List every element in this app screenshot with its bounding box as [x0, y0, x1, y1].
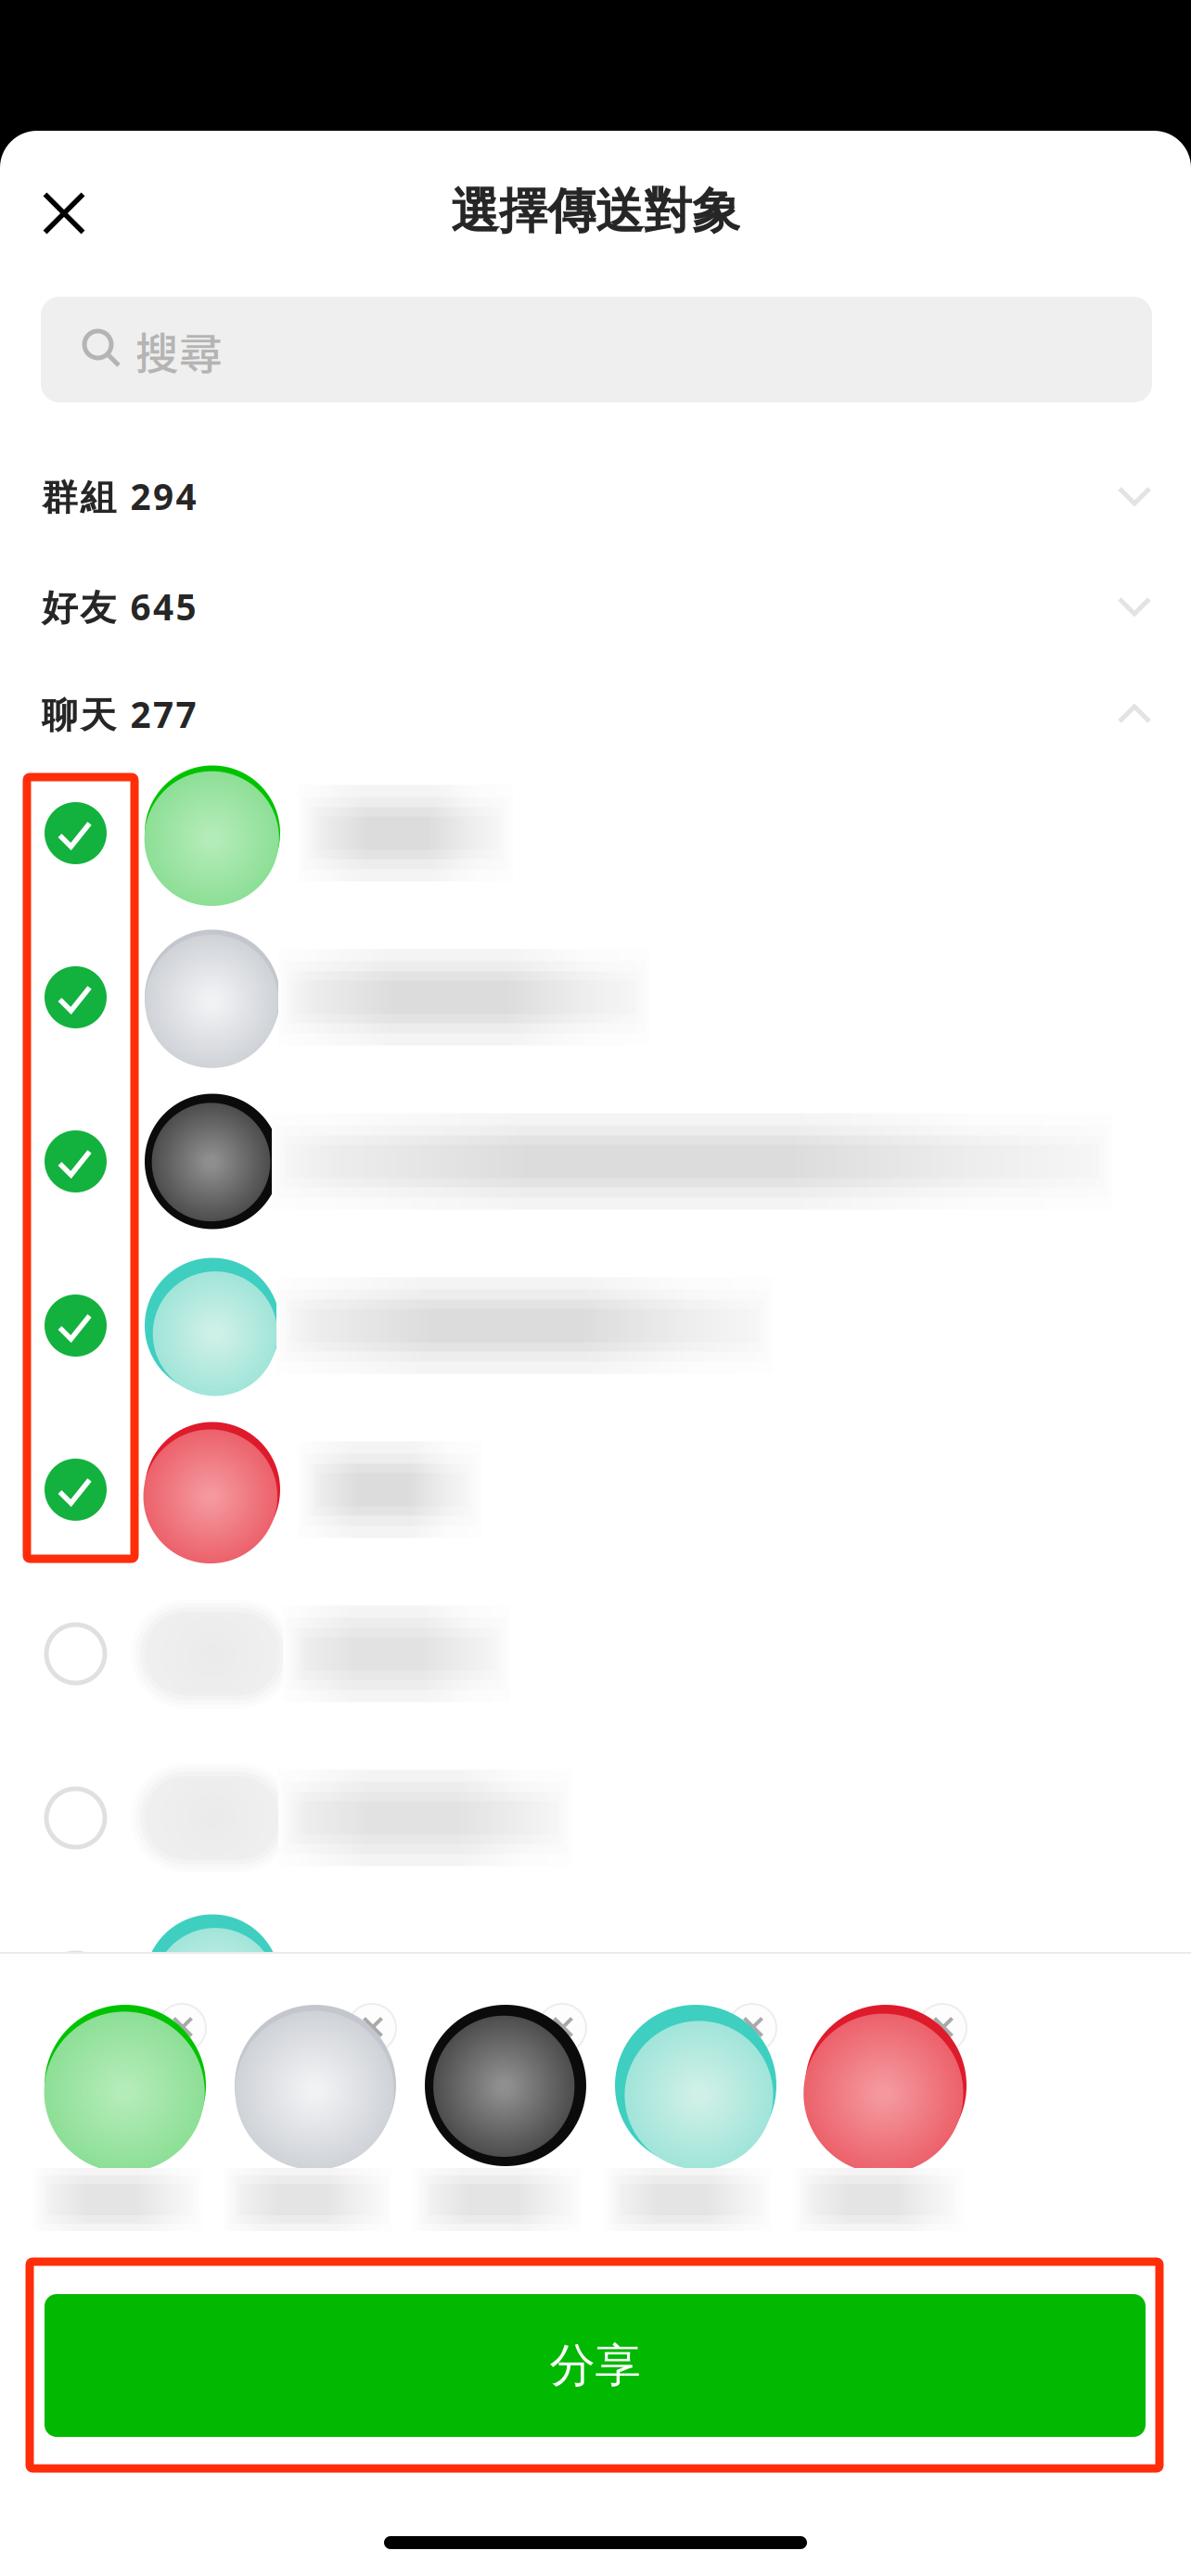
staticText: 好友 645	[42, 583, 196, 630]
button[interactable]: 分享	[45, 2294, 1146, 2437]
staticText: 分享	[550, 2337, 640, 2394]
button[interactable]: 聊天 277	[0, 659, 1191, 769]
button[interactable]	[0, 751, 1191, 915]
button[interactable]: 群組 294	[0, 441, 1191, 551]
button[interactable]	[0, 1572, 1191, 1736]
button[interactable]	[0, 1408, 1191, 1572]
staticText: 選擇傳送對象	[451, 182, 740, 241]
button[interactable]	[0, 1736, 1191, 1900]
button[interactable]: Close	[8, 158, 120, 269]
button[interactable]	[0, 1243, 1191, 1408]
button[interactable]	[0, 915, 1191, 1079]
button[interactable]	[0, 1900, 1191, 2064]
staticText: 群組 294	[42, 472, 196, 520]
button[interactable]: Remove	[158, 2004, 206, 2052]
button[interactable]	[0, 1079, 1191, 1243]
staticText: 聊天 277	[42, 690, 196, 738]
button[interactable]: 好友 645	[0, 552, 1191, 661]
staticText: 搜尋	[135, 319, 223, 382]
button[interactable]: Remove	[728, 2004, 776, 2052]
button[interactable]: Remove	[918, 2004, 967, 2052]
button[interactable]: Remove	[538, 2004, 586, 2052]
button[interactable]: Remove	[348, 2004, 396, 2052]
